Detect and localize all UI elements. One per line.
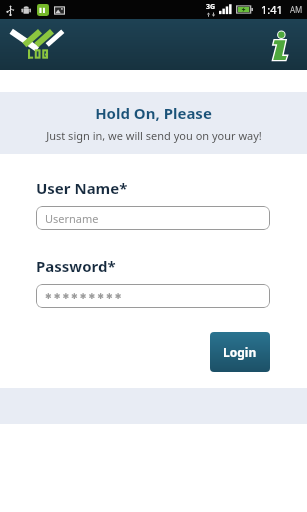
staticText: 3G (206, 2, 216, 12)
staticText: User Name* (36, 178, 128, 198)
staticText: Just sign in, we will send you on your w… (46, 128, 262, 143)
staticText: 1:41 (261, 2, 283, 17)
button[interactable]: Info (263, 28, 297, 62)
staticText: AM (290, 4, 303, 15)
staticText: Hold On, Please (95, 103, 212, 123)
staticText: Password* (36, 256, 116, 276)
button[interactable]: XLOG home (10, 27, 70, 63)
button[interactable]: Login (210, 332, 270, 372)
button[interactable]: Username (36, 206, 270, 230)
staticText: Username (45, 211, 99, 226)
button[interactable]: ✱✱✱✱✱✱✱✱✱ (36, 284, 270, 308)
staticText: Login (223, 344, 257, 360)
staticText: ✱✱✱✱✱✱✱✱✱ (45, 292, 124, 301)
